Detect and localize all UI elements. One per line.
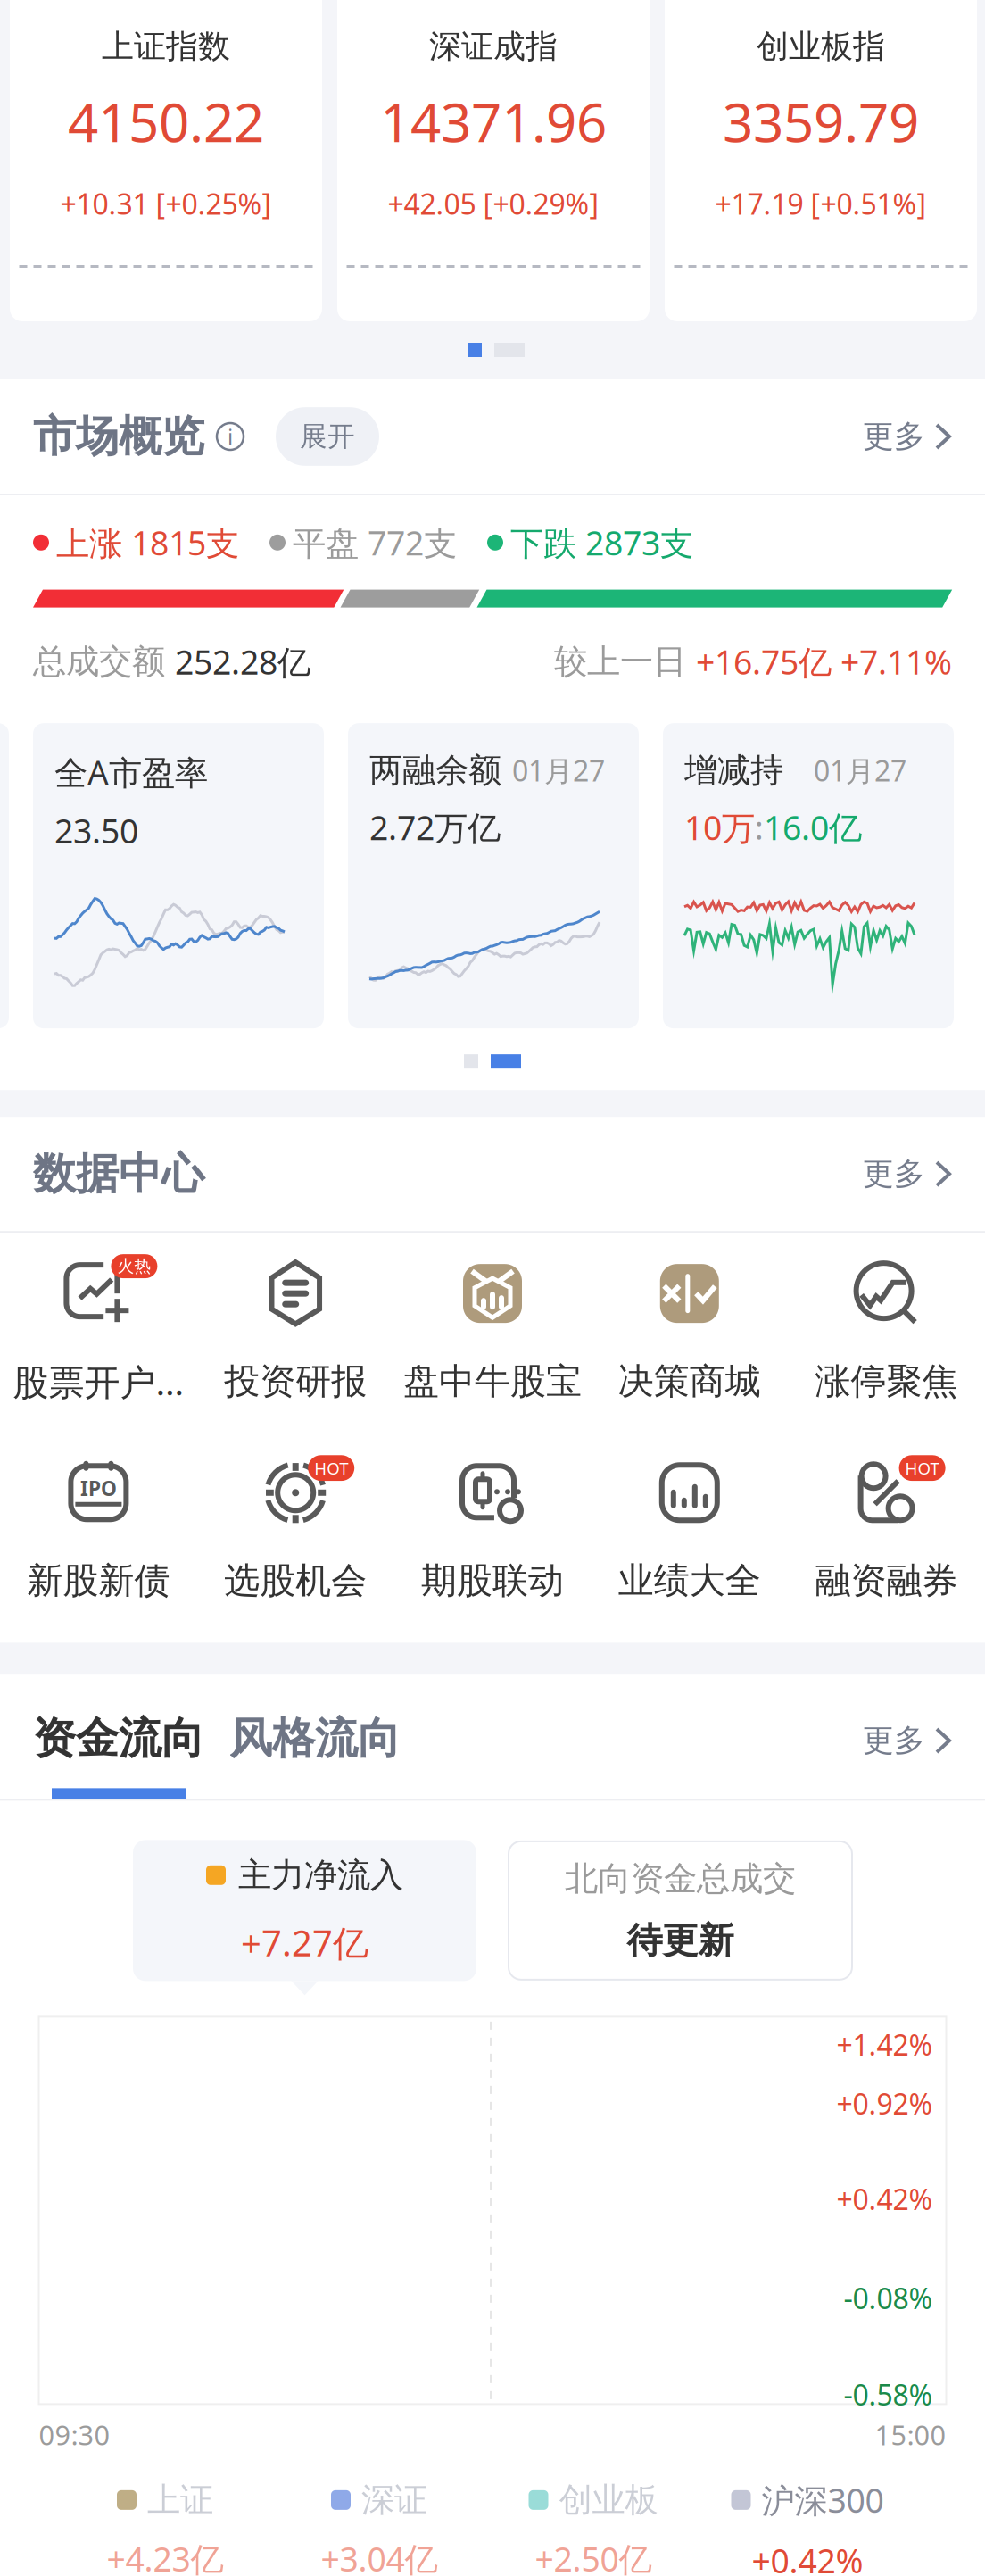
staticText: +0.42% (752, 2538, 863, 2576)
staticText: +16.75亿 +7.11% (696, 640, 952, 684)
staticText: 下跌 2873支 (510, 520, 693, 565)
staticText: 01月27 (512, 751, 605, 789)
staticText: +42.05 [+0.29%] (388, 185, 599, 223)
button[interactable]: 风格流向 (229, 1712, 401, 1765)
staticText: 3359.79 (723, 86, 919, 157)
staticText: +0.42% (836, 2180, 933, 2218)
staticText: 投资研报 (224, 1359, 367, 1403)
button[interactable]: 上证指数 (10, 0, 322, 321)
button[interactable]: 创业板指 (665, 0, 977, 321)
staticText: 23.50 (54, 808, 138, 853)
staticText: 2.72万亿 (369, 805, 501, 849)
staticText: 选股机会 (224, 1559, 367, 1603)
staticText: i (228, 422, 233, 451)
staticText: 更多 (863, 1155, 925, 1193)
staticText: HOT (905, 1457, 939, 1479)
staticText: 较上一日 (554, 641, 696, 682)
staticText: 更多 (863, 1722, 925, 1760)
button[interactable]: 业绩大全 (591, 1461, 788, 1603)
button[interactable]: 北向资金总成交 (509, 1841, 852, 1980)
staticText: 融资融券 (815, 1559, 958, 1603)
button[interactable]: 深证成指 (337, 0, 650, 321)
staticText: 风格流向 (229, 1712, 401, 1765)
staticText: 期股联动 (421, 1559, 564, 1603)
button[interactable]: 增减持 (663, 723, 954, 1028)
staticText: +10.31 [+0.25%] (60, 185, 272, 223)
staticText: +3.04亿 (321, 2537, 438, 2576)
staticText: 主力净流入 (238, 1855, 403, 1896)
staticText: 股票开户… (13, 1358, 184, 1405)
staticText: 火热 (117, 1256, 151, 1276)
staticText: 上涨 1815支 (56, 520, 239, 565)
staticText: 01月27 (814, 751, 906, 789)
button[interactable]: 涨停聚焦 (788, 1261, 985, 1403)
staticText: 深证成指 (429, 27, 558, 66)
button[interactable]: 展开 (276, 407, 379, 466)
button[interactable]: HOT (197, 1461, 394, 1603)
staticText: 展开 (300, 420, 355, 453)
staticText: 北向资金总成交 (565, 1858, 796, 1899)
staticText: 4150.22 (68, 86, 264, 157)
staticText: 资金流向 (33, 1712, 204, 1765)
staticText: 平盘 772支 (293, 520, 457, 565)
staticText: 上证 (147, 2480, 213, 2520)
button[interactable]: 全A市盈率 (33, 723, 324, 1028)
button[interactable]: 盘中牛股宝 (394, 1261, 591, 1403)
staticText: 业绩大全 (618, 1559, 761, 1603)
staticText: 14371.96 (380, 86, 607, 157)
staticText: 涨停聚焦 (815, 1359, 958, 1403)
staticText: -0.08% (844, 2279, 933, 2317)
staticText: 决策商城 (618, 1359, 761, 1403)
staticText: 更多 (863, 417, 925, 455)
button[interactable]: 期股联动 (394, 1461, 591, 1603)
staticText: 上证指数 (102, 27, 230, 66)
staticText: 15:00 (875, 2417, 946, 2453)
staticText: 盘中牛股宝 (403, 1359, 582, 1403)
staticText: +7.27亿 (241, 1919, 368, 1966)
button[interactable]: HOT (788, 1461, 985, 1603)
button[interactable]: 决策商城 (591, 1261, 788, 1403)
staticText: 252.28亿 (175, 640, 310, 684)
staticText: IPO (80, 1475, 117, 1502)
staticText: +2.50亿 (535, 2537, 652, 2576)
button[interactable]: 更多 (863, 1146, 952, 1202)
staticText: +4.23亿 (107, 2537, 223, 2576)
button[interactable]: 火热 (0, 1260, 197, 1405)
button[interactable]: 更多 (863, 1713, 952, 1769)
button[interactable]: 主力净流入 (133, 1840, 476, 1981)
staticText: 深证 (361, 2480, 427, 2520)
staticText: 待更新 (627, 1919, 734, 1963)
staticText: +17.19 [+0.51%] (715, 185, 927, 223)
button[interactable]: IPO (0, 1461, 197, 1603)
staticText: 新股新债 (27, 1559, 170, 1603)
button[interactable]: 更多 (863, 409, 952, 464)
staticText: 09:30 (39, 2417, 110, 2453)
staticText: 创业板 (559, 2480, 658, 2520)
staticText: 16.0亿 (764, 805, 862, 849)
staticText: +0.92% (836, 2085, 933, 2122)
staticText: HOT (314, 1457, 348, 1479)
staticText: 增减持 (684, 750, 783, 791)
staticText: 10万 (684, 805, 755, 849)
button[interactable]: 两融余额 (348, 723, 639, 1028)
staticText: +1.42% (836, 2026, 933, 2064)
staticText: 创业板指 (757, 27, 885, 66)
staticText: 沪深300 (762, 2478, 884, 2522)
staticText: 数据中心 (33, 1148, 204, 1200)
staticText: 两融余额 (369, 750, 501, 791)
staticText: -0.58% (844, 2376, 933, 2413)
staticText: : (755, 806, 764, 849)
staticText: 总成交额 (33, 641, 175, 682)
button[interactable]: 投资研报 (197, 1261, 394, 1403)
staticText: 市场概览 (33, 410, 204, 463)
staticText: 全A市盈率 (54, 750, 208, 794)
